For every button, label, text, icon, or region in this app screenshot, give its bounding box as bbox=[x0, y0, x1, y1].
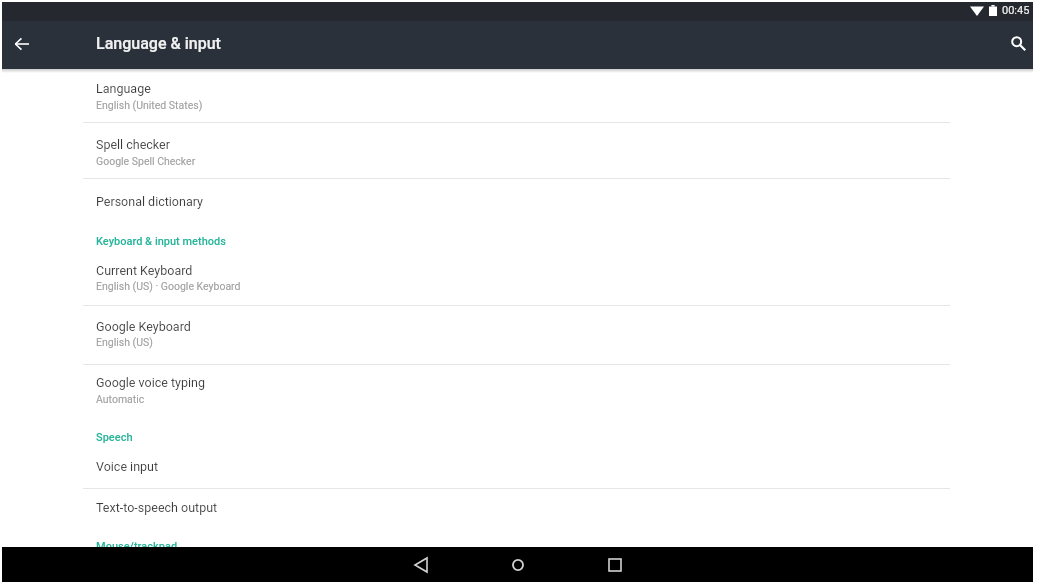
button[interactable] bbox=[0, 122, 1037, 178]
staticText: Mouse/trackpad bbox=[96, 540, 178, 553]
staticText: English (United States) bbox=[96, 99, 203, 111]
staticText: 00:45 bbox=[1002, 4, 1030, 17]
staticText: Keyboard & input methods bbox=[96, 235, 226, 248]
staticText: Voice input bbox=[96, 459, 159, 474]
button[interactable]: Recent apps bbox=[591, 547, 639, 582]
button[interactable] bbox=[0, 69, 1037, 122]
staticText: English (US) · Google Keyboard bbox=[96, 280, 241, 292]
staticText: Language bbox=[96, 81, 151, 96]
button[interactable] bbox=[0, 178, 1037, 225]
staticText: Google Spell Checker bbox=[96, 155, 196, 167]
staticText: English (US) bbox=[96, 336, 153, 348]
staticText: Automatic bbox=[96, 393, 145, 405]
button[interactable] bbox=[0, 253, 1037, 305]
staticText: Speech bbox=[96, 431, 133, 444]
button[interactable] bbox=[0, 364, 1037, 422]
staticText: Text-to-speech output bbox=[96, 500, 218, 515]
button[interactable]: Search bbox=[994, 19, 1037, 67]
button[interactable]: Back bbox=[397, 547, 445, 582]
button[interactable]: Navigate up bbox=[0, 20, 46, 68]
button[interactable]: Home bbox=[494, 547, 542, 582]
staticText: Personal dictionary bbox=[96, 194, 203, 209]
button[interactable] bbox=[0, 305, 1037, 364]
button[interactable] bbox=[0, 450, 1037, 488]
staticText: Google Keyboard bbox=[96, 319, 191, 334]
staticText: Google voice typing bbox=[96, 375, 205, 390]
staticText: Current Keyboard bbox=[96, 263, 193, 278]
staticText: Spell checker bbox=[96, 137, 170, 152]
staticText: Language & input bbox=[96, 34, 221, 53]
button[interactable] bbox=[0, 488, 1037, 530]
